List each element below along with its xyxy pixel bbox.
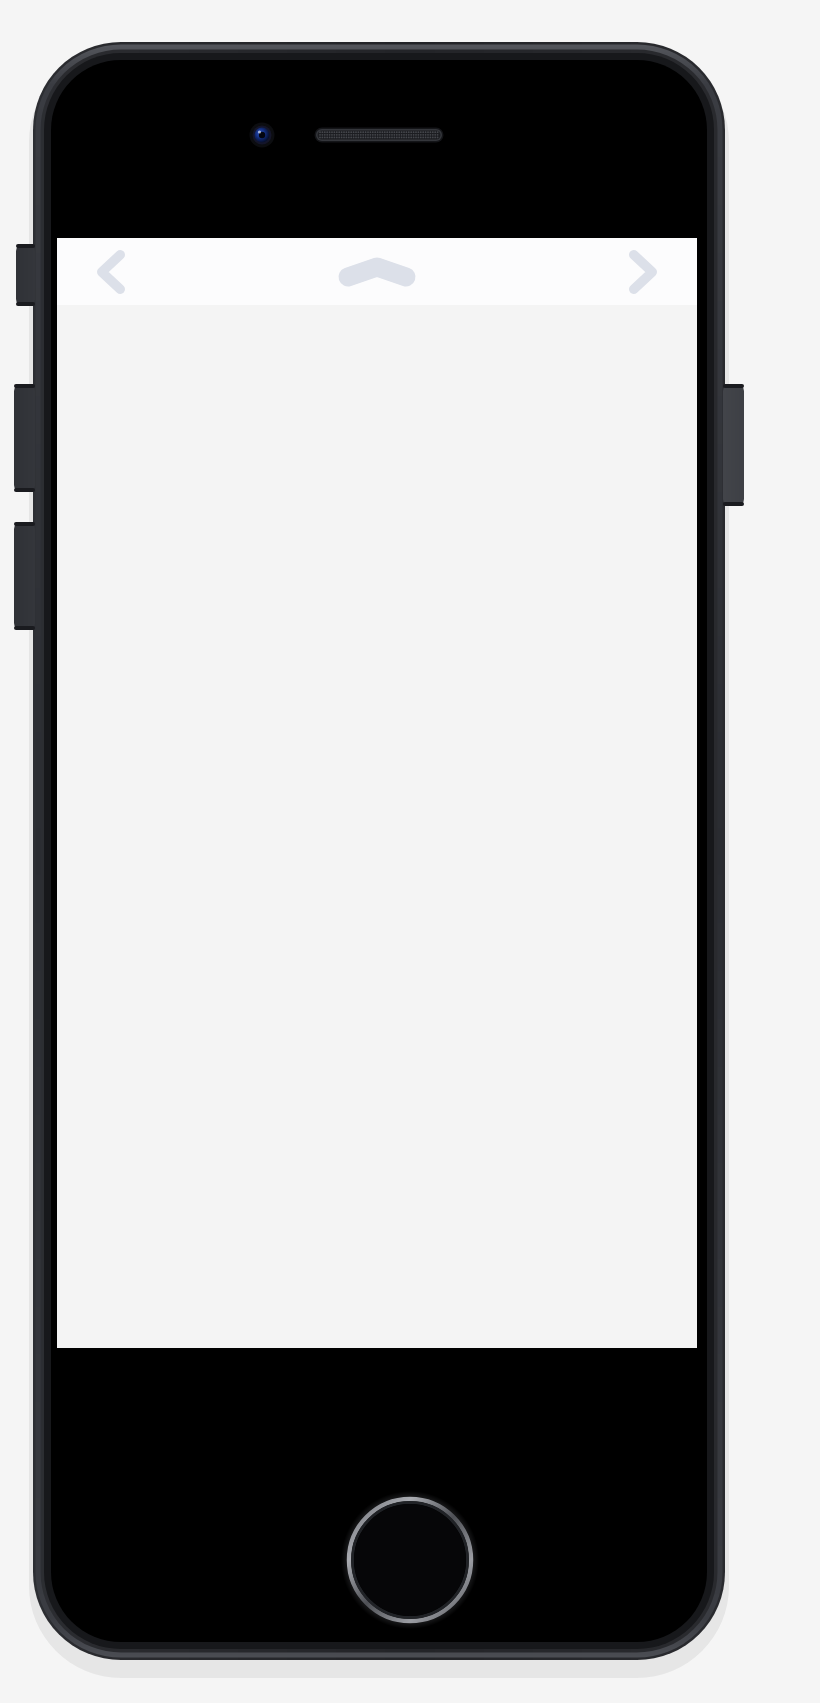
button[interactable]: Collapse bbox=[165, 238, 589, 305]
button[interactable]: Forward bbox=[589, 238, 697, 305]
button[interactable]: Back bbox=[57, 238, 165, 305]
button[interactable]: Home bbox=[344, 1494, 476, 1626]
